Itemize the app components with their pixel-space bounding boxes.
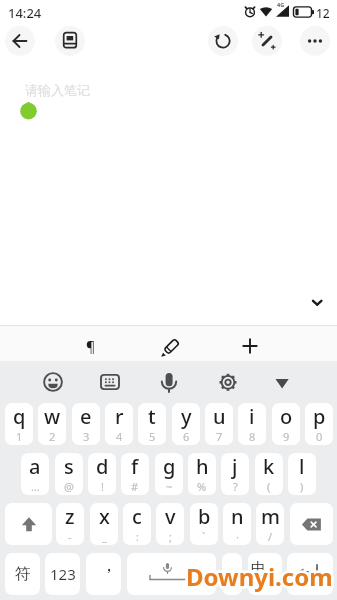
staticText: 3 <box>83 429 90 444</box>
staticText: 英 <box>267 576 276 587</box>
staticText: 14:24 <box>8 4 42 22</box>
button[interactable] <box>153 366 185 398</box>
button[interactable]: j <box>221 453 249 495</box>
button[interactable]: t <box>138 403 166 445</box>
button[interactable]: w <box>38 403 66 445</box>
staticText: y <box>181 403 192 430</box>
staticText: 1 <box>16 429 23 444</box>
staticText: c <box>132 503 142 530</box>
staticText: x <box>99 503 110 530</box>
staticText: · <box>236 529 239 544</box>
staticText: : <box>136 529 139 544</box>
staticText: _ <box>102 529 107 544</box>
staticText: 。 <box>225 567 239 585</box>
staticText: a <box>29 453 41 480</box>
staticText: ! <box>101 479 104 494</box>
staticText: … <box>31 479 40 494</box>
button[interactable]: k <box>255 453 283 495</box>
button[interactable]: ¶ <box>76 331 106 361</box>
staticText: p <box>313 403 326 430</box>
button[interactable]: e <box>72 403 100 445</box>
button[interactable]: f <box>121 453 149 495</box>
staticText: o <box>280 403 293 430</box>
button[interactable]: q <box>5 403 33 445</box>
staticText: 12 <box>316 5 330 21</box>
staticText: j <box>232 453 238 480</box>
button[interactable]: u <box>205 403 233 445</box>
staticText: m <box>261 503 280 530</box>
staticText: g <box>163 453 176 480</box>
staticText: 2 <box>49 429 56 444</box>
staticText: s <box>64 453 74 480</box>
button[interactable]: g <box>155 453 183 495</box>
staticText: Downyi.com <box>186 560 333 593</box>
button[interactable] <box>37 366 69 398</box>
button[interactable]: z <box>56 503 84 545</box>
button[interactable]: x <box>90 503 118 545</box>
button[interactable] <box>127 553 216 595</box>
staticText: d <box>96 453 109 480</box>
button[interactable]: n <box>223 503 251 545</box>
staticText: @ <box>64 479 74 494</box>
button[interactable]: 中 <box>248 553 282 595</box>
button[interactable] <box>208 26 238 56</box>
button[interactable]: c <box>123 503 151 545</box>
button[interactable]: i <box>238 403 266 445</box>
staticText: e <box>80 403 92 430</box>
staticText: ? <box>233 479 238 494</box>
staticText: b <box>198 503 211 530</box>
button[interactable]: h <box>188 453 216 495</box>
staticText: 4G <box>277 1 285 8</box>
button[interactable]: ， <box>86 553 121 595</box>
staticText: ( <box>267 479 271 494</box>
button[interactable] <box>94 366 126 398</box>
button[interactable]: y <box>172 403 200 445</box>
staticText: 请输入笔记 <box>25 82 90 98</box>
button[interactable] <box>252 26 282 56</box>
button[interactable]: 123 <box>45 553 80 595</box>
button[interactable] <box>300 26 330 56</box>
button[interactable] <box>5 26 35 56</box>
button[interactable]: a <box>21 453 49 495</box>
staticText: 符 <box>15 564 31 584</box>
button[interactable] <box>235 331 265 361</box>
button[interactable]: l <box>288 453 316 495</box>
staticText: q <box>13 403 26 430</box>
staticText: ) <box>300 479 304 494</box>
staticText: 0 <box>316 429 323 444</box>
button[interactable]: s <box>55 453 83 495</box>
button[interactable]: 。 <box>222 553 242 595</box>
button[interactable]: d <box>88 453 116 495</box>
staticText: h <box>196 453 209 480</box>
button[interactable] <box>156 331 186 361</box>
staticText: ， <box>100 554 118 577</box>
staticText: 5 <box>149 429 156 444</box>
button[interactable]: p <box>305 403 333 445</box>
staticText: / <box>268 529 273 544</box>
staticText: ¶ <box>86 337 96 356</box>
button[interactable]: r <box>105 403 133 445</box>
button[interactable] <box>55 26 85 56</box>
staticText: % <box>197 479 207 494</box>
staticText: # <box>131 479 139 494</box>
button[interactable]: b <box>190 503 218 545</box>
button[interactable] <box>266 366 298 398</box>
staticText: u <box>213 403 226 430</box>
button[interactable] <box>304 290 330 316</box>
button[interactable]: v <box>156 503 184 545</box>
button[interactable] <box>212 366 244 398</box>
button[interactable]: m <box>256 503 284 545</box>
button[interactable] <box>290 503 333 545</box>
staticText: f <box>131 453 139 480</box>
staticText: ~ <box>166 479 173 494</box>
staticText: k <box>263 453 275 480</box>
staticText: - <box>68 529 72 544</box>
button[interactable]: 符 <box>5 553 40 595</box>
button[interactable] <box>5 503 52 545</box>
button[interactable]: o <box>272 403 300 445</box>
staticText: ` <box>202 529 206 544</box>
staticText: w <box>44 403 61 430</box>
staticText: z <box>65 503 75 530</box>
staticText: ; <box>169 529 172 544</box>
button[interactable] <box>287 553 333 595</box>
